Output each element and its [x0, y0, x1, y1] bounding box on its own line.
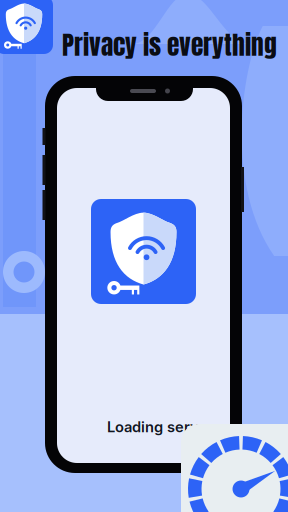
- staticText: Privacy is everything: [62, 26, 277, 64]
- staticText: Loading server: [107, 418, 213, 436]
